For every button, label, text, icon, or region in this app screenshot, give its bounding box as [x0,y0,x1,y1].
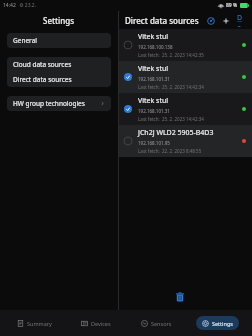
staticText: Settings [212,320,233,327]
staticText: Devices [91,320,111,327]
staticText: 14:42 [3,2,16,9]
staticText: Direct data sources [13,75,72,84]
staticText: ⚙ 23.2. [19,2,37,9]
staticText: 192.168.100.138 [138,44,173,50]
button[interactable]: Selected [119,93,252,125]
button[interactable]: Not selected [121,38,135,52]
staticText: 89 % [226,2,238,9]
staticText: Vitek stul [138,32,169,42]
staticText: 192.168.101.31 [138,108,170,114]
staticText: Sensors [151,320,172,327]
button[interactable]: Sensors [135,316,178,330]
staticText: Last fetch: 25. 2. 2023 14:42:34 [138,116,204,122]
button[interactable]: General [7,33,111,48]
button[interactable]: Direct data sources [7,72,111,87]
staticText: 192.168.101.31 [138,76,170,82]
staticText: Settings [43,15,75,26]
staticText: General [13,36,37,45]
button[interactable]: Delete [172,289,188,305]
staticText: HW group technologies [13,99,100,108]
button[interactable]: Not selected [119,29,252,61]
staticText: 192.168.101.95 [138,140,170,146]
button[interactable]: HW group technologies [7,96,111,111]
button[interactable]: Not selected [121,134,135,148]
button[interactable]: Scan network [205,15,216,26]
staticText: Direct data sources [125,15,199,26]
staticText: Done [237,13,244,27]
button[interactable]: Summary [11,316,58,330]
button[interactable]: Add data source [220,15,231,26]
button[interactable]: Done [235,11,246,29]
staticText: Summary [27,320,52,327]
staticText: JCh2J WLD2 5905-B4D3 [138,128,214,138]
staticText: Last fetch: 25. 2. 2023 14:42:35 [138,52,204,58]
staticText: Cloud data sources [13,60,72,69]
button[interactable]: Devices [75,316,117,330]
staticText: Vitek stul [138,64,169,74]
button[interactable]: Selected [121,70,135,84]
button[interactable]: Not selected [119,125,252,157]
staticText: Vitek stul [138,96,169,106]
button[interactable]: Selected [121,102,135,116]
staticText: Last fetch: 25. 2. 2023 14:42:34 [138,84,204,90]
button[interactable]: Cloud data sources [7,57,111,72]
button[interactable]: Selected [119,61,252,93]
button[interactable]: Settings [196,316,239,330]
staticText: Last fetch: 22. 2. 2023 8:48:55 [138,148,202,154]
